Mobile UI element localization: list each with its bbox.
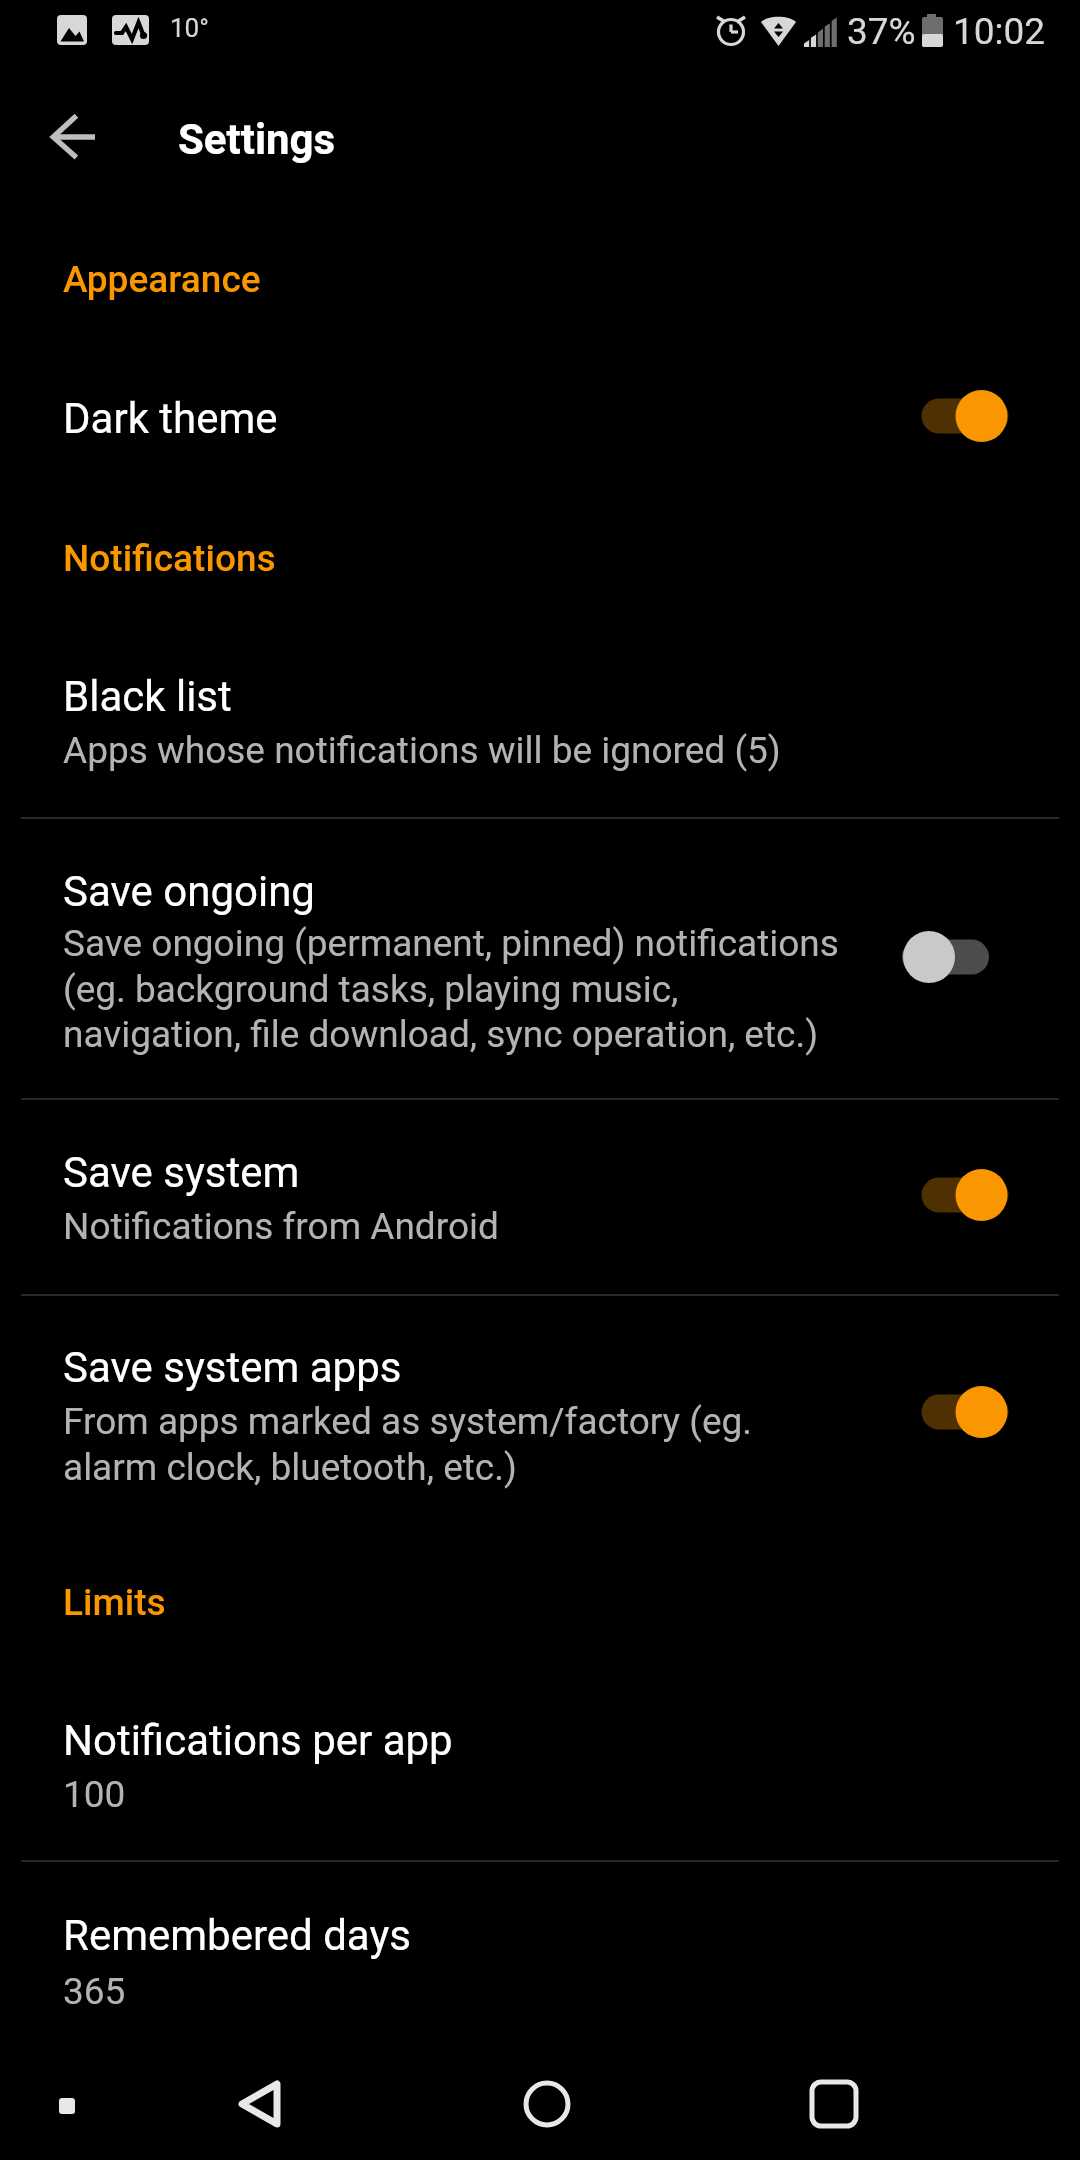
button[interactable]: Back [228,2072,292,2136]
staticText: Save system apps [63,1343,402,1392]
staticText: Apps whose notifications will be ignored… [63,729,781,772]
button[interactable]: Dark theme [0,355,1080,478]
staticText: Notifications per app [63,1716,453,1765]
staticText: Black list [63,672,232,721]
staticText: Appearance [63,258,261,301]
button[interactable]: Switch, on [890,1150,1030,1240]
button[interactable]: Home [515,2072,579,2136]
button[interactable]: Hide navigation bar [40,2077,94,2131]
button[interactable]: Black list [0,640,1080,816]
staticText: Save ongoing [63,867,315,916]
button[interactable]: Switch, on [890,371,1030,461]
staticText: Limits [63,1581,166,1624]
button[interactable]: Recent apps [802,2072,866,2136]
staticText: 100 [63,1773,126,1816]
staticText: Settings [178,115,336,164]
button[interactable]: Save system apps [0,1296,1080,1512]
staticText: Notifications from Android [63,1205,499,1248]
staticText: Notifications [63,537,276,580]
staticText: 365 [63,1970,126,2013]
button[interactable]: Switch, on [890,1367,1030,1457]
staticText: Save system [63,1148,300,1197]
button[interactable]: Save ongoing [0,819,1080,1097]
button[interactable]: Notifications per app [0,1684,1080,1859]
button[interactable]: Switch, off [890,912,1030,1002]
staticText: 37% [847,10,916,53]
staticText: Dark theme [63,394,278,443]
button[interactable]: Save system [0,1100,1080,1293]
button[interactable]: Navigate up [28,92,120,184]
staticText: Remembered days [63,1911,411,1960]
staticText: Save ongoing (permanent, pinned) notific… [63,922,839,1056]
staticText: From apps marked as system/factory (eg. … [63,1400,753,1489]
button[interactable]: Remembered days [0,1862,1080,2045]
staticText: 10° [170,13,209,43]
staticText: 10:02 [953,10,1046,53]
